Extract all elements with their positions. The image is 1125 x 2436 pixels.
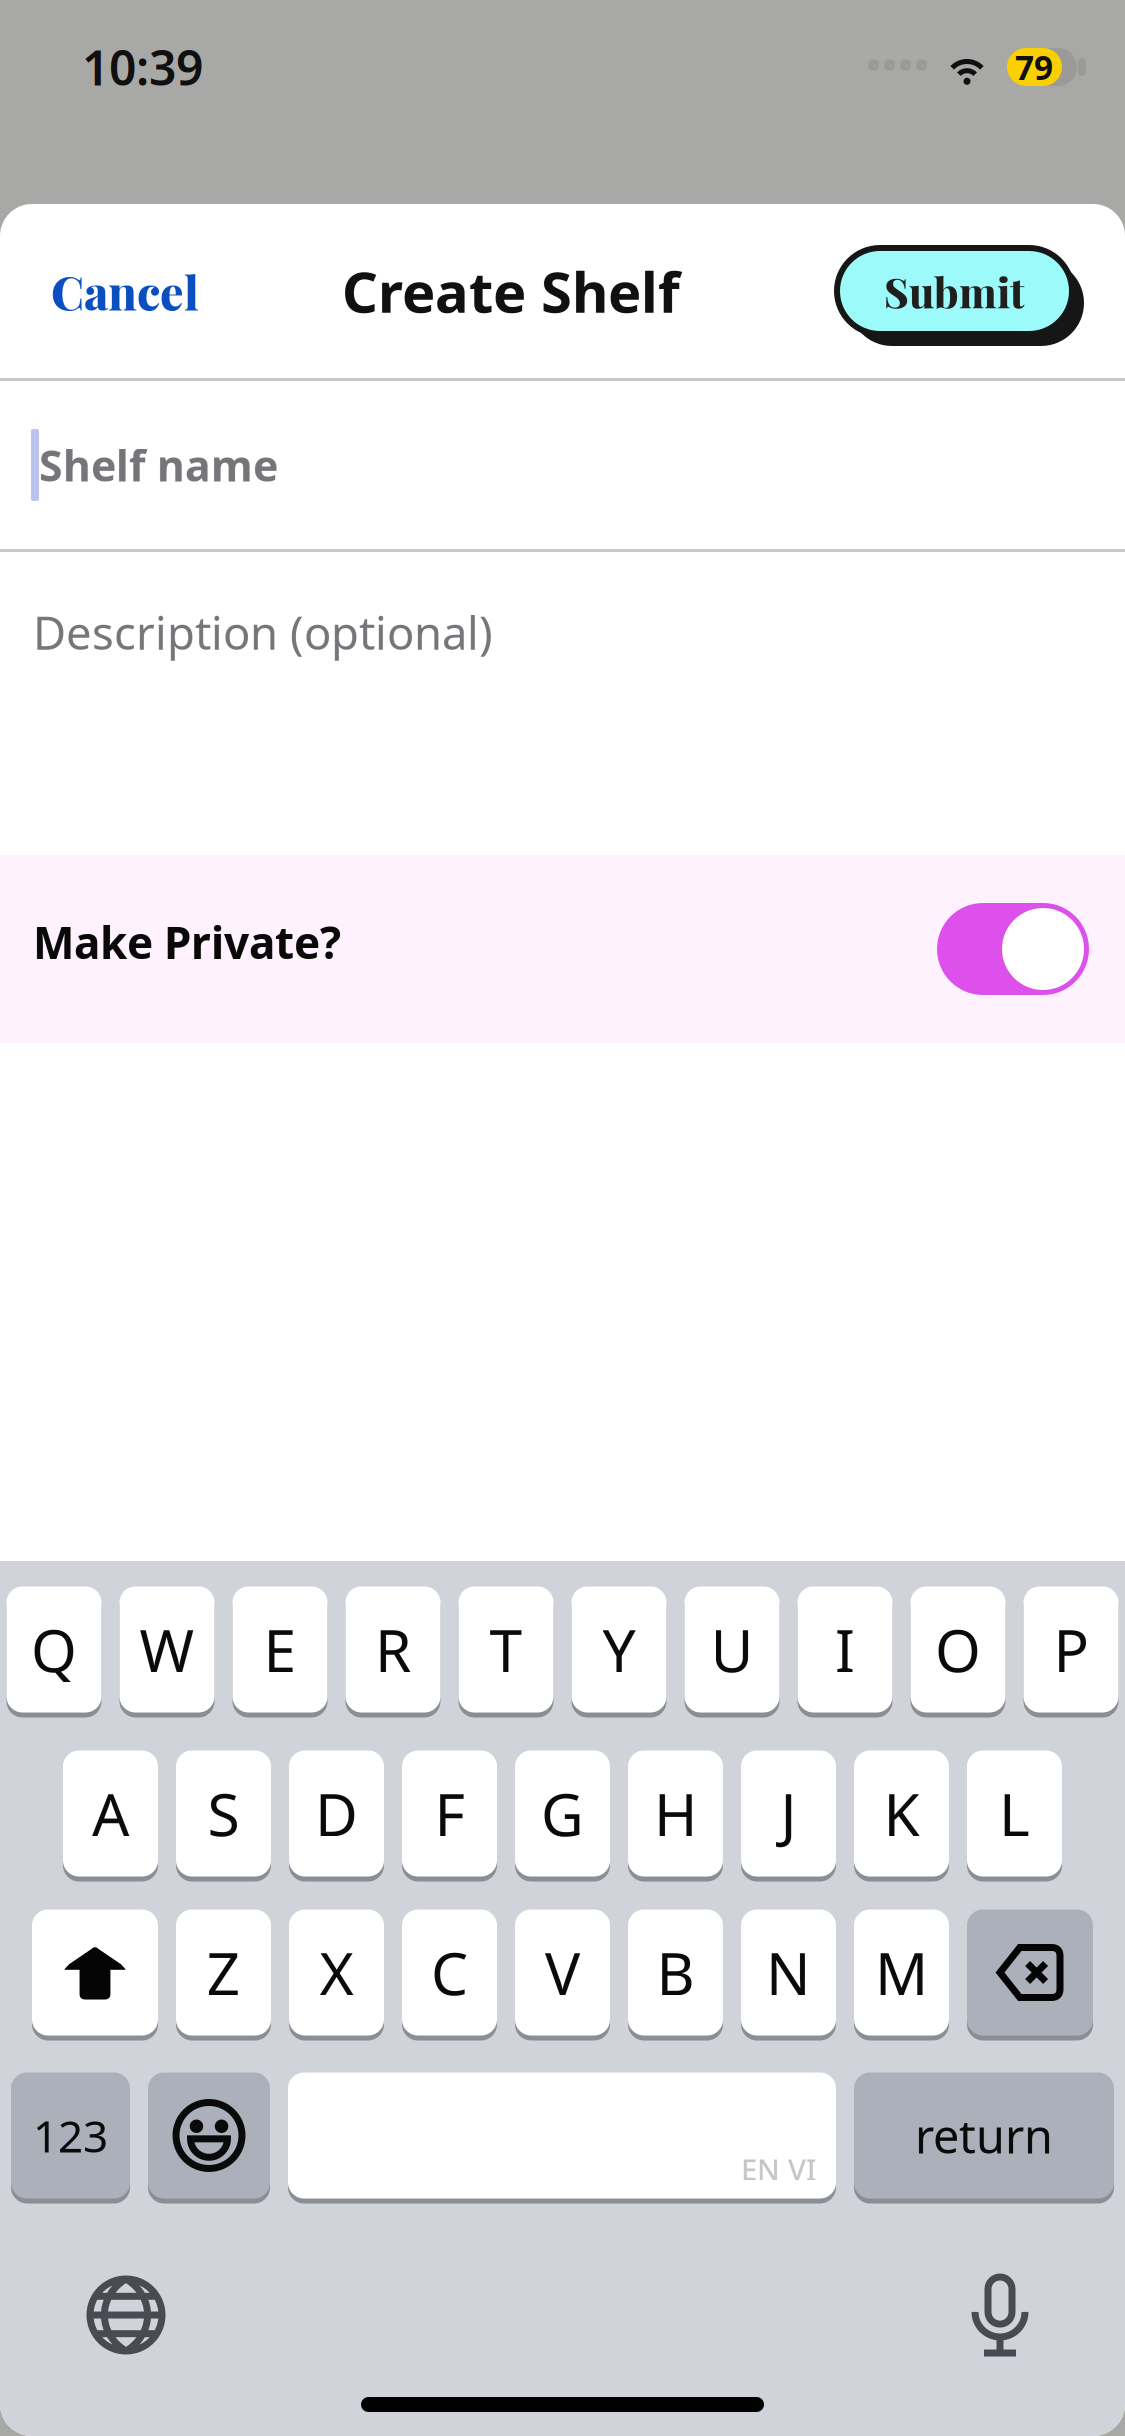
staticText: Z <box>206 1933 240 2011</box>
staticText: 123 <box>33 2106 108 2165</box>
button[interactable]: R <box>345 1584 440 1715</box>
staticText: D <box>315 1774 358 1852</box>
staticText: W <box>139 1610 194 1688</box>
staticText: M <box>875 1933 928 2011</box>
staticText: Cancel <box>51 260 199 322</box>
button[interactable]: Cancel <box>0 231 250 351</box>
button[interactable]: E <box>232 1584 327 1715</box>
staticText: O <box>935 1610 981 1688</box>
button[interactable]: S <box>176 1748 271 1879</box>
staticText: Y <box>602 1610 635 1688</box>
staticText: Create Shelf <box>342 254 680 328</box>
button[interactable]: C <box>402 1907 497 2038</box>
staticText: L <box>999 1774 1030 1852</box>
button[interactable]: W <box>119 1584 214 1715</box>
button[interactable]: Numbers <box>11 2070 130 2201</box>
button[interactable]: Q <box>6 1584 101 1715</box>
button[interactable]: A <box>63 1748 158 1879</box>
staticText: E <box>263 1610 296 1688</box>
staticText: K <box>883 1774 919 1852</box>
button[interactable]: F <box>402 1748 497 1879</box>
staticText: F <box>434 1774 464 1852</box>
button[interactable]: Delete <box>967 1907 1093 2038</box>
button[interactable]: Make Private <box>937 903 1089 995</box>
button[interactable]: Emoji <box>148 2070 270 2201</box>
button[interactable]: T <box>458 1584 553 1715</box>
button[interactable]: D <box>289 1748 384 1879</box>
button[interactable]: V <box>515 1907 610 2038</box>
staticText: X <box>319 1933 353 2011</box>
staticText: A <box>92 1774 129 1852</box>
button[interactable]: Y <box>571 1584 666 1715</box>
staticText: P <box>1053 1610 1088 1688</box>
staticText: Q <box>31 1610 77 1688</box>
staticText: B <box>656 1933 694 2011</box>
staticText: G <box>541 1774 584 1852</box>
button[interactable]: P <box>1023 1584 1118 1715</box>
button[interactable]: N <box>741 1907 836 2038</box>
staticText: T <box>489 1610 522 1688</box>
button[interactable]: K <box>854 1748 949 1879</box>
staticText: return <box>915 2104 1053 2166</box>
staticText: V <box>545 1933 580 2011</box>
staticText: 79 <box>1015 45 1053 89</box>
button[interactable]: Shift <box>32 1907 158 2038</box>
staticText: 10:39 <box>82 35 203 99</box>
staticText: S <box>207 1774 239 1852</box>
button[interactable]: L <box>967 1748 1062 1879</box>
staticText: Submit <box>884 263 1025 319</box>
staticText: J <box>780 1774 796 1852</box>
button[interactable]: Dictation <box>959 2261 1041 2369</box>
button[interactable]: O <box>910 1584 1005 1715</box>
button[interactable]: J <box>741 1748 836 1879</box>
button[interactable]: H <box>628 1748 723 1879</box>
staticText: C <box>431 1933 468 2011</box>
staticText: R <box>375 1610 411 1688</box>
staticText: U <box>710 1610 753 1688</box>
button[interactable]: U <box>684 1584 779 1715</box>
button[interactable]: Next keyboard <box>74 2262 178 2368</box>
staticText: Make Private? <box>33 913 341 971</box>
button[interactable]: return <box>854 2070 1114 2201</box>
staticText: H <box>654 1774 697 1852</box>
staticText: EN VI <box>741 2149 816 2188</box>
staticText: N <box>766 1933 811 2011</box>
button[interactable]: G <box>515 1748 610 1879</box>
button[interactable]: M <box>854 1907 949 2038</box>
button[interactable]: B <box>628 1907 723 2038</box>
button[interactable]: Submit <box>825 236 1084 346</box>
button[interactable]: space <box>288 2070 836 2201</box>
staticText: Description (optional) <box>33 602 493 662</box>
staticText: Shelf name <box>39 437 278 493</box>
button[interactable]: Z <box>176 1907 271 2038</box>
staticText: I <box>835 1610 855 1688</box>
button[interactable]: X <box>289 1907 384 2038</box>
button[interactable]: I <box>797 1584 892 1715</box>
